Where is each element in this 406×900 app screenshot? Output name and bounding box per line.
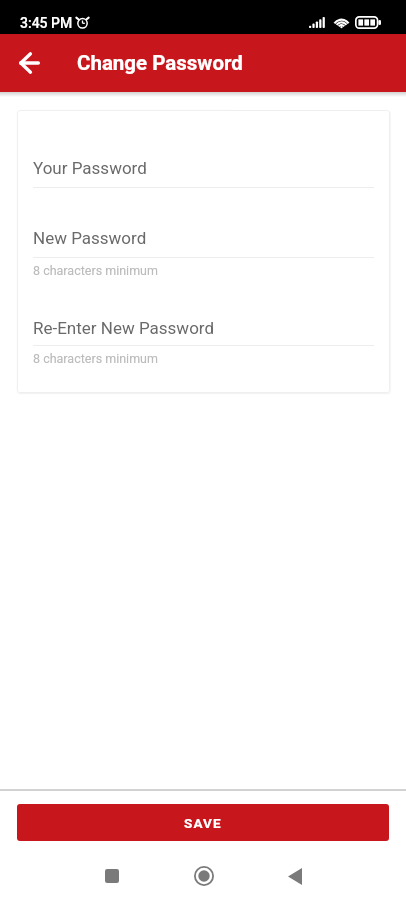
staticText: New Password xyxy=(33,228,147,248)
button[interactable]: Back xyxy=(273,854,317,898)
button[interactable]: Home xyxy=(182,854,226,898)
staticText: 8 characters minimum xyxy=(33,263,158,278)
staticText: 8 characters minimum xyxy=(33,351,158,366)
staticText: Re-Enter New Password xyxy=(33,318,215,338)
button[interactable]: Recents xyxy=(90,854,134,898)
staticText: SAVE xyxy=(184,815,222,831)
button[interactable]: Back xyxy=(7,41,51,85)
staticText: Your Password xyxy=(33,158,147,178)
staticText: 3:45 PM xyxy=(20,15,73,31)
button[interactable]: SAVE xyxy=(17,804,389,841)
staticText: Change Password xyxy=(77,51,243,75)
